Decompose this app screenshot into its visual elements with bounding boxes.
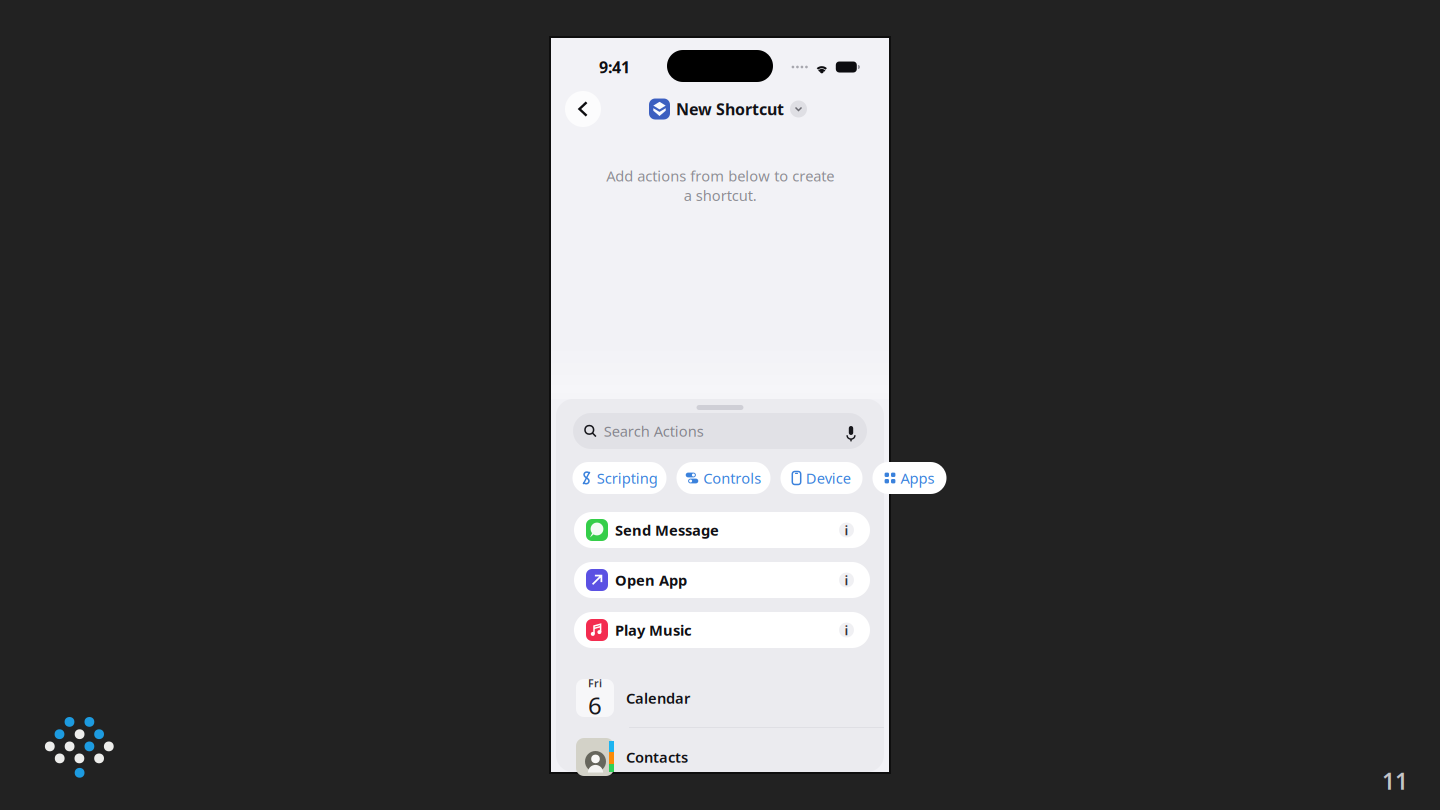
- button[interactable]: Open App: [574, 562, 870, 598]
- staticText: Fri: [588, 676, 602, 690]
- staticText: Search Actions: [604, 421, 704, 441]
- staticText: Scripting: [597, 468, 658, 488]
- button[interactable]: Play Music: [574, 612, 870, 648]
- staticText: 9:41: [599, 56, 630, 78]
- staticText: i: [844, 621, 848, 639]
- staticText: i: [844, 571, 848, 589]
- button[interactable]: Scripting: [572, 462, 666, 494]
- staticText: 6: [588, 689, 602, 721]
- staticText: Controls: [703, 468, 761, 488]
- button[interactable]: Device: [780, 462, 862, 494]
- staticText: Play Music: [615, 620, 692, 640]
- button[interactable]: Controls: [676, 462, 770, 494]
- button[interactable]: Search Actions: [556, 413, 884, 449]
- staticText: Calendar: [626, 688, 690, 708]
- staticText: Send Message: [615, 520, 719, 540]
- staticText: Open App: [615, 570, 687, 590]
- staticText: 11: [1382, 766, 1408, 796]
- button[interactable]: Rename shortcut: [790, 100, 807, 117]
- staticText: New Shortcut: [676, 98, 784, 120]
- button[interactable]: Send Message: [574, 512, 870, 548]
- staticText: Device: [806, 468, 851, 488]
- staticText: Add actions from below to create a short…: [606, 166, 834, 205]
- staticText: Contacts: [626, 747, 688, 767]
- button[interactable]: Back: [565, 91, 601, 127]
- staticText: i: [844, 521, 848, 539]
- staticText: Apps: [900, 468, 934, 488]
- button[interactable]: Apps: [872, 462, 946, 494]
- button[interactable]: Contacts: [556, 728, 884, 786]
- button[interactable]: Fri: [556, 669, 884, 727]
